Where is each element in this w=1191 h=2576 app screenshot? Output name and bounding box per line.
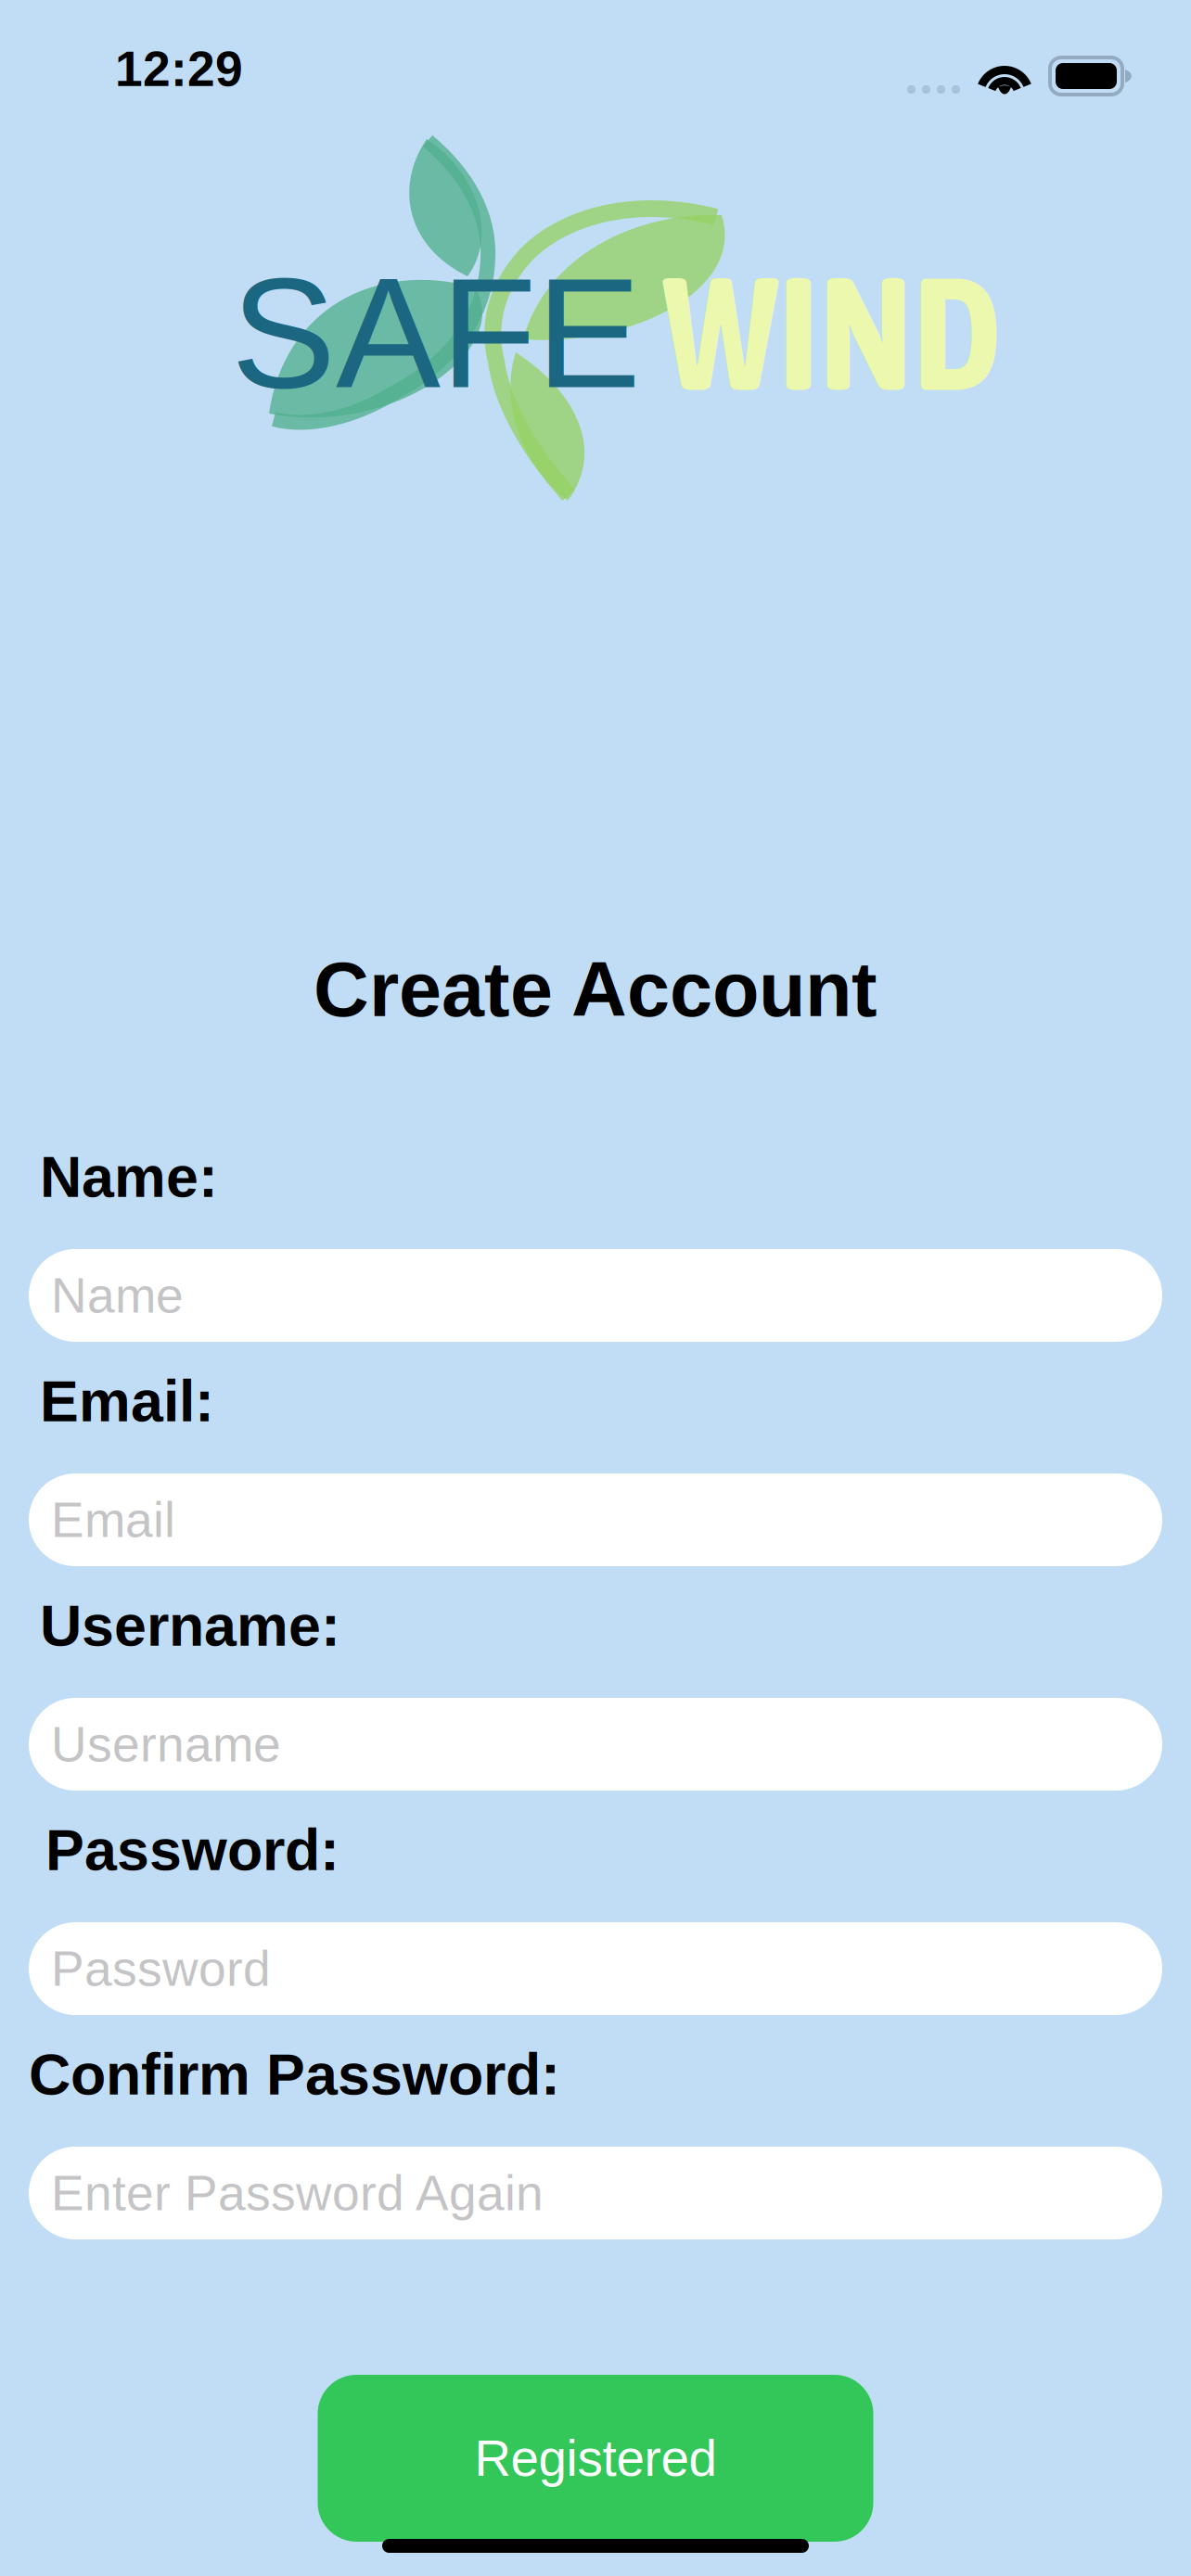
button[interactable]: Password (29, 1922, 1162, 2015)
staticText: Email (51, 1492, 175, 1547)
button[interactable]: Enter Password Again (29, 2147, 1162, 2239)
staticText: Name (51, 1268, 184, 1323)
staticText: Username: (40, 1593, 340, 1658)
button[interactable]: Username (29, 1698, 1162, 1791)
staticText: WIND (663, 242, 1002, 423)
staticText: Enter Password Again (51, 2165, 544, 2221)
staticText: Confirm Password: (29, 2042, 560, 2107)
staticText: Email: (40, 1369, 214, 1434)
staticText: 12:29 (115, 41, 243, 96)
staticText: Username (51, 1717, 281, 1772)
staticText: Registered (474, 2430, 717, 2487)
staticText: Password: (45, 1817, 339, 1882)
button[interactable]: Email (29, 1473, 1162, 1566)
button[interactable]: Name (29, 1249, 1162, 1342)
staticText: Create Account (314, 947, 877, 1032)
button[interactable]: Registered (318, 2375, 873, 2542)
staticText: SAFE (231, 245, 641, 420)
staticText: Password (51, 1941, 271, 1996)
staticText: Name: (40, 1144, 218, 1209)
